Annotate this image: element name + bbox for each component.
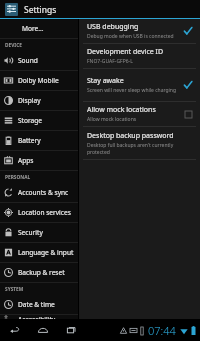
staticText: Allow mock locations [87, 105, 156, 115]
other: Checked [182, 25, 194, 37]
button[interactable]: Battery [0, 131, 78, 150]
staticText: Display [18, 96, 41, 105]
button[interactable]: Stay awake [79, 69, 200, 101]
button[interactable]: Accounts & sync [0, 183, 78, 202]
staticText: 07:44 [148, 323, 176, 338]
staticText: Date & time [18, 300, 55, 309]
staticText: USB debugging [87, 22, 139, 32]
staticText: Accessibility [18, 315, 56, 319]
staticText: Location services [18, 208, 71, 217]
staticText: Security [18, 228, 43, 237]
staticText: FNO7-GUAF-GFP6-L [87, 58, 133, 65]
staticText: Development device ID [87, 47, 164, 57]
staticText: More... [22, 24, 44, 33]
button[interactable]: Allow mock locations [79, 102, 200, 126]
button[interactable]: Location services [0, 203, 78, 222]
button[interactable]: USB debugging [79, 19, 200, 43]
staticText: Allow mock locations [87, 116, 137, 123]
button[interactable]: Storage [0, 111, 78, 130]
button[interactable]: Sound [0, 51, 78, 70]
staticText: Language & input [18, 248, 74, 257]
button[interactable]: Display [0, 91, 78, 110]
button[interactable]: Backup & reset [0, 263, 78, 282]
button[interactable]: Apps [0, 151, 78, 170]
staticText: Battery [18, 136, 41, 145]
button[interactable]: Back [8, 323, 22, 337]
button[interactable]: Recent apps [64, 323, 78, 337]
staticText: Stay awake [87, 76, 124, 86]
staticText: Apps [18, 156, 34, 165]
button[interactable]: Date & time [0, 295, 78, 314]
button[interactable]: Desktop backup password [79, 127, 200, 159]
staticText: PERSONAL [5, 174, 31, 181]
button[interactable]: Dolby Mobile [0, 71, 78, 90]
staticText: Sound [18, 56, 38, 65]
staticText: Debug mode when USB is connected [87, 33, 174, 40]
staticText: Storage [18, 116, 43, 125]
button[interactable]: Accessibility [0, 315, 78, 319]
staticText: Desktop full backups aren't currently pr… [87, 142, 194, 155]
other: Checked [182, 79, 194, 91]
staticText: Backup & reset [18, 268, 65, 277]
staticText: Accounts & sync [18, 188, 69, 197]
button[interactable]: Development device ID [79, 44, 200, 68]
staticText: DEVICE [5, 42, 22, 49]
button[interactable]: Language & input [0, 243, 78, 262]
staticText: Screen will never sleep while charging [87, 87, 177, 94]
button[interactable]: Home [36, 323, 50, 337]
staticText: SYSTEM [5, 286, 24, 293]
button[interactable]: More... [0, 19, 78, 38]
staticText: Settings [24, 4, 57, 16]
staticText: Desktop backup password [87, 131, 174, 141]
button[interactable]: Security [0, 223, 78, 242]
other: Unchecked [182, 108, 194, 120]
staticText: Dolby Mobile [18, 76, 59, 85]
